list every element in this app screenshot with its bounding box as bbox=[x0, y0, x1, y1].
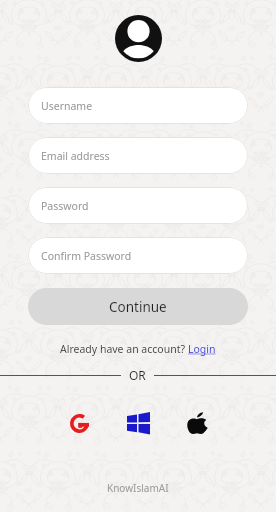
staticText: KnowIslamAI bbox=[107, 481, 169, 495]
button[interactable]: Password bbox=[28, 187, 248, 224]
button[interactable]: Username bbox=[28, 87, 248, 124]
staticText: Login bbox=[188, 342, 216, 356]
staticText: OR bbox=[129, 367, 146, 383]
button[interactable]: Sign in with Apple bbox=[180, 406, 214, 440]
staticText: Confirm Password bbox=[41, 249, 132, 263]
staticText: Username bbox=[41, 99, 93, 113]
button[interactable]: Email address bbox=[28, 137, 248, 174]
staticText: Already have an account? bbox=[60, 342, 188, 356]
staticText: Email address bbox=[41, 149, 110, 163]
button[interactable]: Sign in with Microsoft bbox=[121, 406, 155, 440]
button[interactable]: Sign in with Google bbox=[62, 406, 96, 440]
staticText: Continue bbox=[109, 298, 167, 316]
staticText: Password bbox=[41, 199, 89, 213]
button[interactable]: Continue bbox=[28, 288, 248, 325]
button[interactable]: Login bbox=[188, 342, 216, 356]
button[interactable]: Confirm Password bbox=[28, 237, 248, 274]
